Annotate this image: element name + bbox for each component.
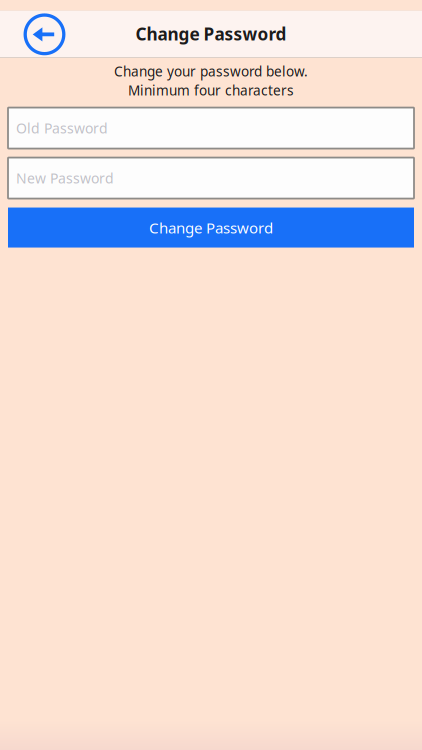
button[interactable]: Back bbox=[0, 11, 70, 57]
staticText: Change Password bbox=[135, 22, 286, 45]
staticText: Old Password bbox=[16, 118, 108, 138]
button[interactable]: New Password bbox=[8, 157, 414, 198]
staticText: Minimum four characters bbox=[128, 81, 294, 99]
staticText: Change your password below. bbox=[114, 62, 308, 80]
staticText: Change Password bbox=[149, 217, 273, 238]
button[interactable]: Old Password bbox=[8, 107, 414, 148]
staticText: New Password bbox=[16, 168, 114, 188]
button[interactable]: Change Password bbox=[8, 207, 414, 247]
